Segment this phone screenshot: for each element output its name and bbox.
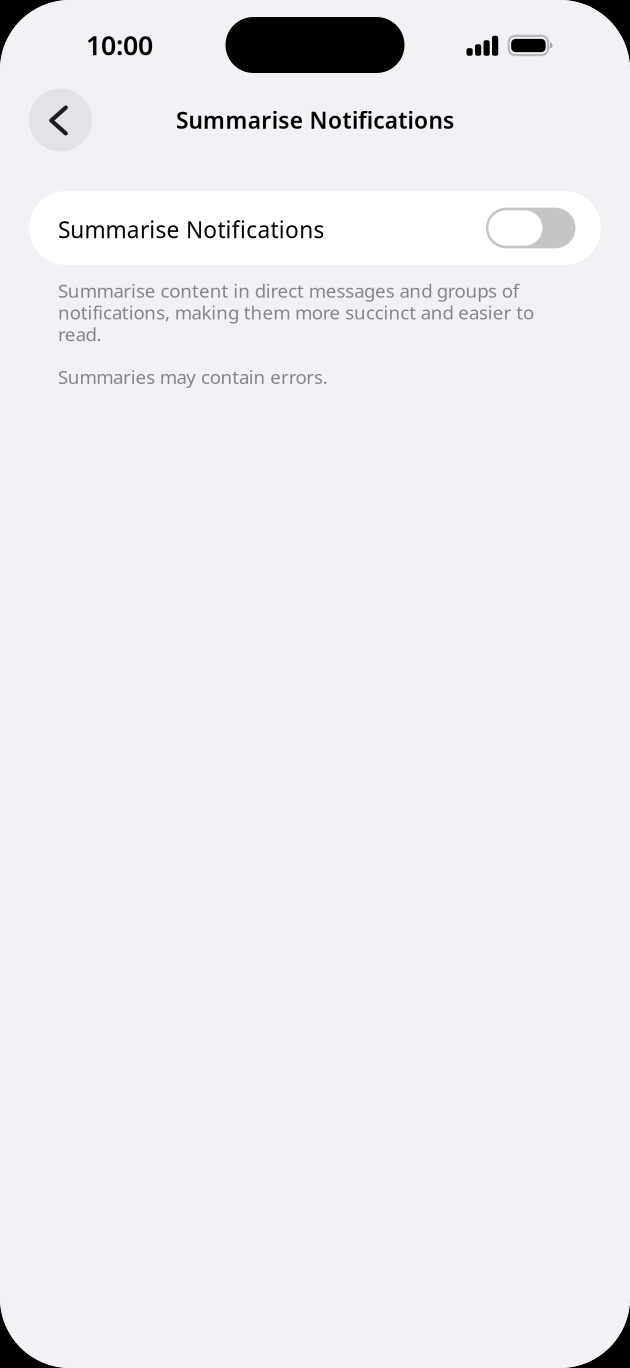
staticText: Summarise Notifications (176, 105, 454, 135)
button[interactable]: Summarise Notifications (29, 191, 601, 265)
staticText: Summarise content in direct messages and… (58, 278, 534, 346)
staticText: Summarise Notifications (58, 214, 324, 244)
staticText: Summaries may contain errors. (58, 364, 328, 389)
staticText: 10:00 (86, 27, 153, 63)
button[interactable]: Back (29, 88, 92, 151)
